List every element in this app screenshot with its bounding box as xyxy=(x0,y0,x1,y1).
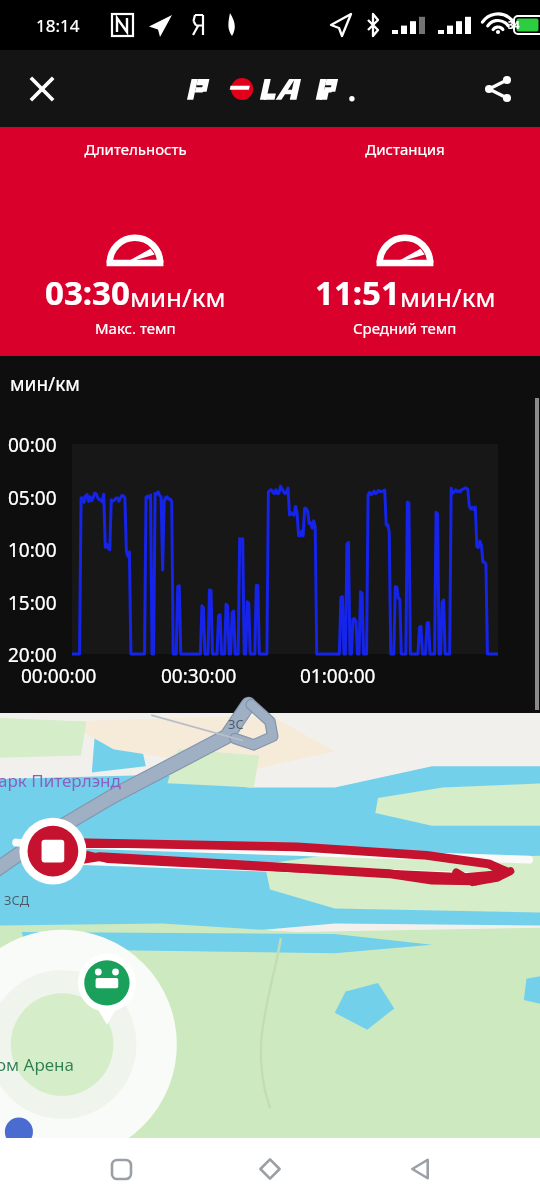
staticText: ЗСД xyxy=(4,891,30,909)
staticText: 03:30 xyxy=(45,270,130,315)
button[interactable]: Share xyxy=(470,61,526,117)
button[interactable]: Close xyxy=(14,61,70,117)
staticText: мин/км xyxy=(130,279,226,314)
staticText: 15:00 xyxy=(8,590,57,616)
staticText: 00:00 xyxy=(8,432,57,458)
staticText: 05:00 xyxy=(8,485,57,511)
staticText: арк Питерлэнд xyxy=(0,769,121,792)
staticText: 18:14 xyxy=(36,14,80,37)
staticText: 10:00 xyxy=(8,537,57,563)
staticText: 11:51 xyxy=(315,270,400,315)
staticText: 00:30:00 xyxy=(161,663,237,689)
staticText: 00:00:00 xyxy=(21,663,97,689)
staticText: мин/км xyxy=(10,371,80,397)
staticText: мин/км xyxy=(400,279,496,314)
button[interactable]: Back xyxy=(391,1140,449,1198)
staticText: 20:00 xyxy=(8,642,57,668)
staticText: Длительность xyxy=(84,139,187,159)
staticText: ЗС xyxy=(228,715,244,733)
staticText: Средний темп xyxy=(353,318,457,338)
staticText: Макс. темп xyxy=(95,318,176,338)
button[interactable]: Home xyxy=(241,1140,299,1198)
staticText: 01:00:00 xyxy=(300,663,376,689)
button[interactable]: Recent apps xyxy=(92,1140,150,1198)
button[interactable]: арк Питерлэнд xyxy=(0,713,540,1138)
staticText: 34 xyxy=(508,18,520,32)
staticText: ом Арена xyxy=(0,1053,75,1076)
staticText: Дистанция xyxy=(365,139,445,159)
